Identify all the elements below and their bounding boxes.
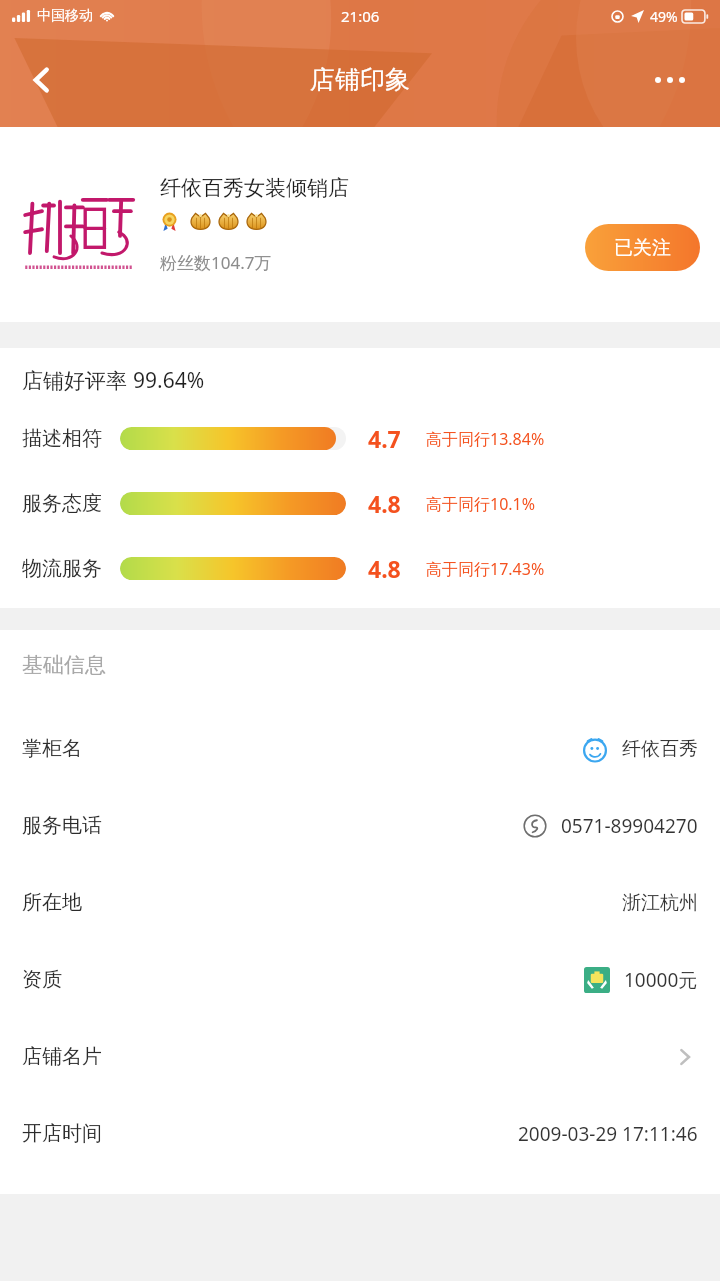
staticText: 纤依百秀女装倾销店 xyxy=(160,175,349,201)
staticText: 描述相符 xyxy=(22,426,102,451)
staticText: 掌柜名 xyxy=(22,736,82,761)
staticText: 粉丝数104.7万 xyxy=(160,251,272,274)
staticText: 店铺好评率 xyxy=(22,366,133,395)
staticText: 高于同行13.84% xyxy=(426,428,545,450)
button[interactable]: 开店时间 xyxy=(0,1095,720,1172)
staticText: 2009-03-29 17:11:46 xyxy=(518,1121,698,1147)
staticText: 店铺名片 xyxy=(22,1044,102,1069)
staticText: 服务态度 xyxy=(22,491,102,516)
staticText: 浙江杭州 xyxy=(622,891,698,915)
staticText: 资质 xyxy=(22,967,62,992)
button[interactable]: More options xyxy=(642,56,698,104)
staticText: 所在地 xyxy=(22,890,82,915)
staticText: 4.8 xyxy=(368,553,414,584)
button[interactable]: Back xyxy=(14,52,70,108)
button[interactable]: 服务电话 xyxy=(0,787,720,864)
button[interactable]: 店铺名片 xyxy=(0,1018,720,1095)
staticText: 10000元 xyxy=(624,967,698,993)
button[interactable]: 所在地 xyxy=(0,864,720,941)
staticText: 开店时间 xyxy=(22,1121,102,1146)
staticText: 4.7 xyxy=(368,423,414,454)
button[interactable]: 资质 xyxy=(0,941,720,1018)
staticText: 0571-89904270 xyxy=(561,813,698,839)
staticText: 中国移动 xyxy=(37,7,93,25)
staticText: 店铺印象 xyxy=(310,64,410,95)
staticText: 纤依百秀 xyxy=(622,737,698,761)
staticText: 99.64% xyxy=(133,366,205,395)
staticText: 4.8 xyxy=(368,488,414,519)
staticText: 已关注 xyxy=(614,236,671,260)
staticText: 21:06 xyxy=(341,6,380,26)
staticText: 物流服务 xyxy=(22,556,102,581)
staticText: 基础信息 xyxy=(22,652,106,678)
button[interactable]: 掌柜名 xyxy=(0,710,720,787)
staticText: 49% xyxy=(650,7,678,26)
button[interactable]: 已关注 xyxy=(585,224,700,271)
staticText: 高于同行10.1% xyxy=(426,493,536,515)
staticText: 服务电话 xyxy=(22,813,102,838)
staticText: 高于同行17.43% xyxy=(426,558,545,580)
